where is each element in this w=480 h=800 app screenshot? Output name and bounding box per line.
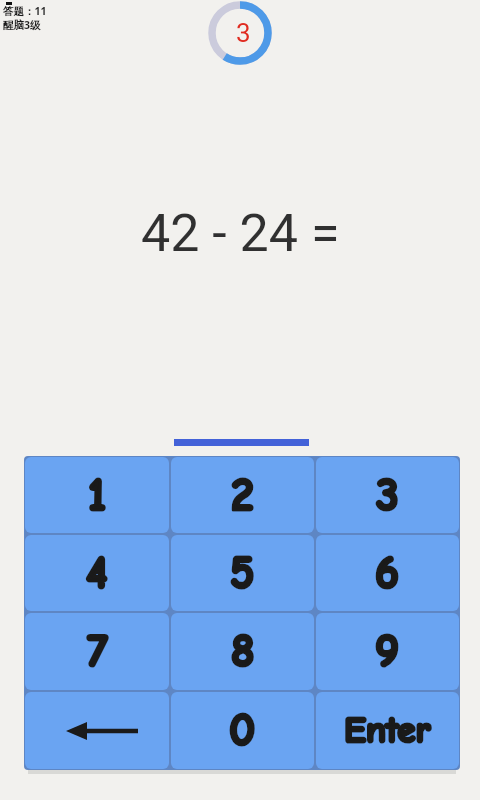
staticText: 1 bbox=[88, 469, 107, 522]
button[interactable]: 3 bbox=[316, 457, 459, 533]
button[interactable]: 7 bbox=[25, 613, 169, 690]
button[interactable]: 9 bbox=[316, 613, 459, 690]
staticText: Enter bbox=[344, 709, 431, 752]
staticText: 7 bbox=[87, 625, 108, 678]
button[interactable]: 1 bbox=[25, 457, 169, 533]
staticText: 6 bbox=[375, 547, 400, 600]
staticText: 2 bbox=[231, 469, 254, 522]
staticText: 6 bbox=[375, 547, 400, 600]
button[interactable]: 8 bbox=[171, 613, 314, 690]
staticText: 醒脑3级 bbox=[3, 18, 41, 32]
staticText: 0 bbox=[229, 704, 256, 757]
button[interactable]: 2 bbox=[171, 457, 314, 533]
staticText: 0 bbox=[229, 704, 256, 757]
button[interactable]: Enter bbox=[316, 692, 459, 769]
staticText: 8 bbox=[231, 625, 255, 678]
staticText: 2 bbox=[231, 469, 254, 522]
staticText: 9 bbox=[375, 625, 400, 678]
staticText: 8 bbox=[231, 625, 255, 678]
staticText: 9 bbox=[375, 625, 400, 678]
button[interactable]: 4 bbox=[25, 535, 169, 611]
button[interactable]: 6 bbox=[316, 535, 459, 611]
staticText: 4 bbox=[86, 547, 108, 600]
staticText: 1 bbox=[88, 469, 107, 522]
staticText: Enter bbox=[344, 709, 431, 752]
staticText: 5 bbox=[230, 547, 255, 600]
staticText: 3 bbox=[376, 469, 399, 522]
button[interactable] bbox=[25, 692, 169, 769]
staticText: 答题：11 bbox=[3, 4, 47, 18]
staticText: 5 bbox=[230, 547, 255, 600]
staticText: 4 bbox=[86, 547, 108, 600]
staticText: 3 bbox=[376, 469, 399, 522]
staticText: 42 - 24 = bbox=[141, 203, 340, 264]
staticText: 7 bbox=[87, 625, 108, 678]
staticText: 3 bbox=[236, 18, 251, 48]
button[interactable]: 5 bbox=[171, 535, 314, 611]
button[interactable]: 0 bbox=[171, 692, 314, 769]
